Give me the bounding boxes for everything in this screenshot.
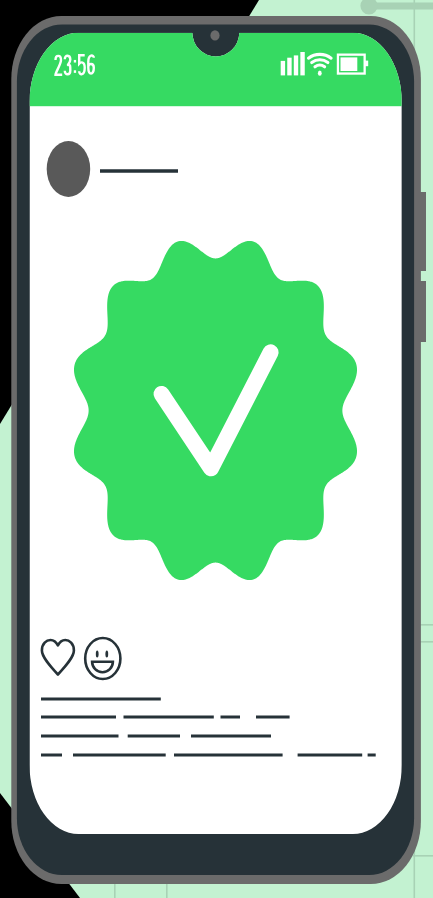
- button[interactable]: Like: [38, 634, 78, 682]
- button[interactable]: Account: [42, 136, 188, 202]
- button[interactable]: React: [81, 634, 125, 682]
